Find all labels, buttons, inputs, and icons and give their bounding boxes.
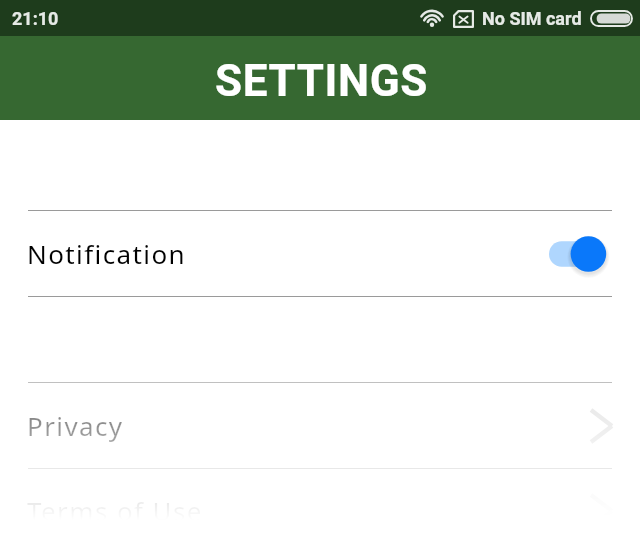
staticText: Privacy [27, 408, 124, 443]
staticText: Notification [27, 236, 186, 271]
button[interactable]: Notification, on [549, 222, 640, 286]
staticText: SETTINGS [215, 55, 428, 107]
button[interactable]: Privacy [0, 383, 640, 468]
button[interactable]: Notification [0, 211, 640, 296]
staticText: No SIM card [482, 8, 582, 29]
button[interactable]: Open [565, 390, 640, 462]
staticText: Terms of Use [27, 493, 203, 528]
staticText: 21:10 [12, 8, 59, 29]
